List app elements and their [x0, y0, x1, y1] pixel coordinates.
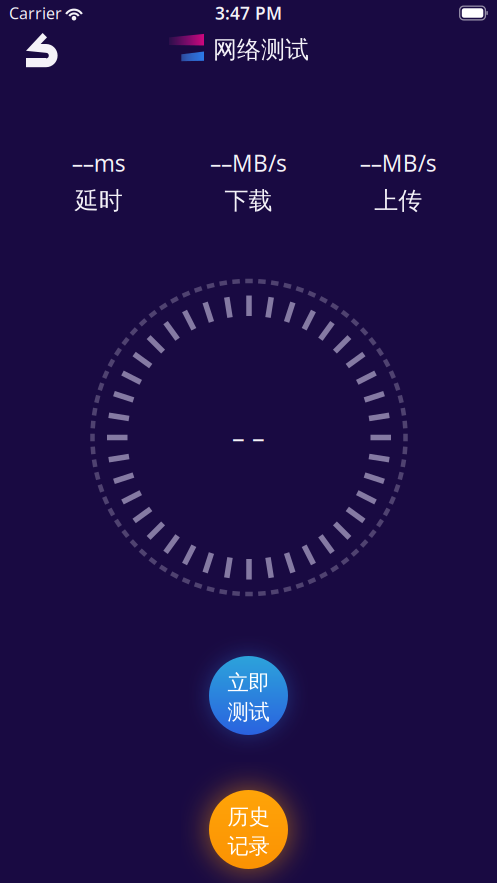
staticText: – –: [232, 421, 265, 454]
staticText: 历史: [227, 804, 269, 830]
button[interactable]: Back: [17, 28, 69, 74]
button[interactable]: 历史: [209, 790, 288, 869]
staticText: 下载: [224, 186, 272, 216]
button[interactable]: 立即: [209, 656, 288, 735]
staticText: 立即: [227, 670, 269, 696]
staticText: 延时: [75, 186, 123, 216]
staticText: 上传: [374, 186, 422, 216]
staticText: 记录: [227, 833, 269, 859]
staticText: ––ms: [72, 148, 126, 178]
staticText: 测试: [227, 699, 269, 725]
staticText: ––MB/s: [210, 148, 287, 178]
staticText: ––MB/s: [360, 148, 437, 178]
staticText: Carrier: [9, 2, 62, 24]
staticText: 网络测试: [213, 35, 309, 64]
staticText: 3:47 PM: [215, 1, 282, 24]
